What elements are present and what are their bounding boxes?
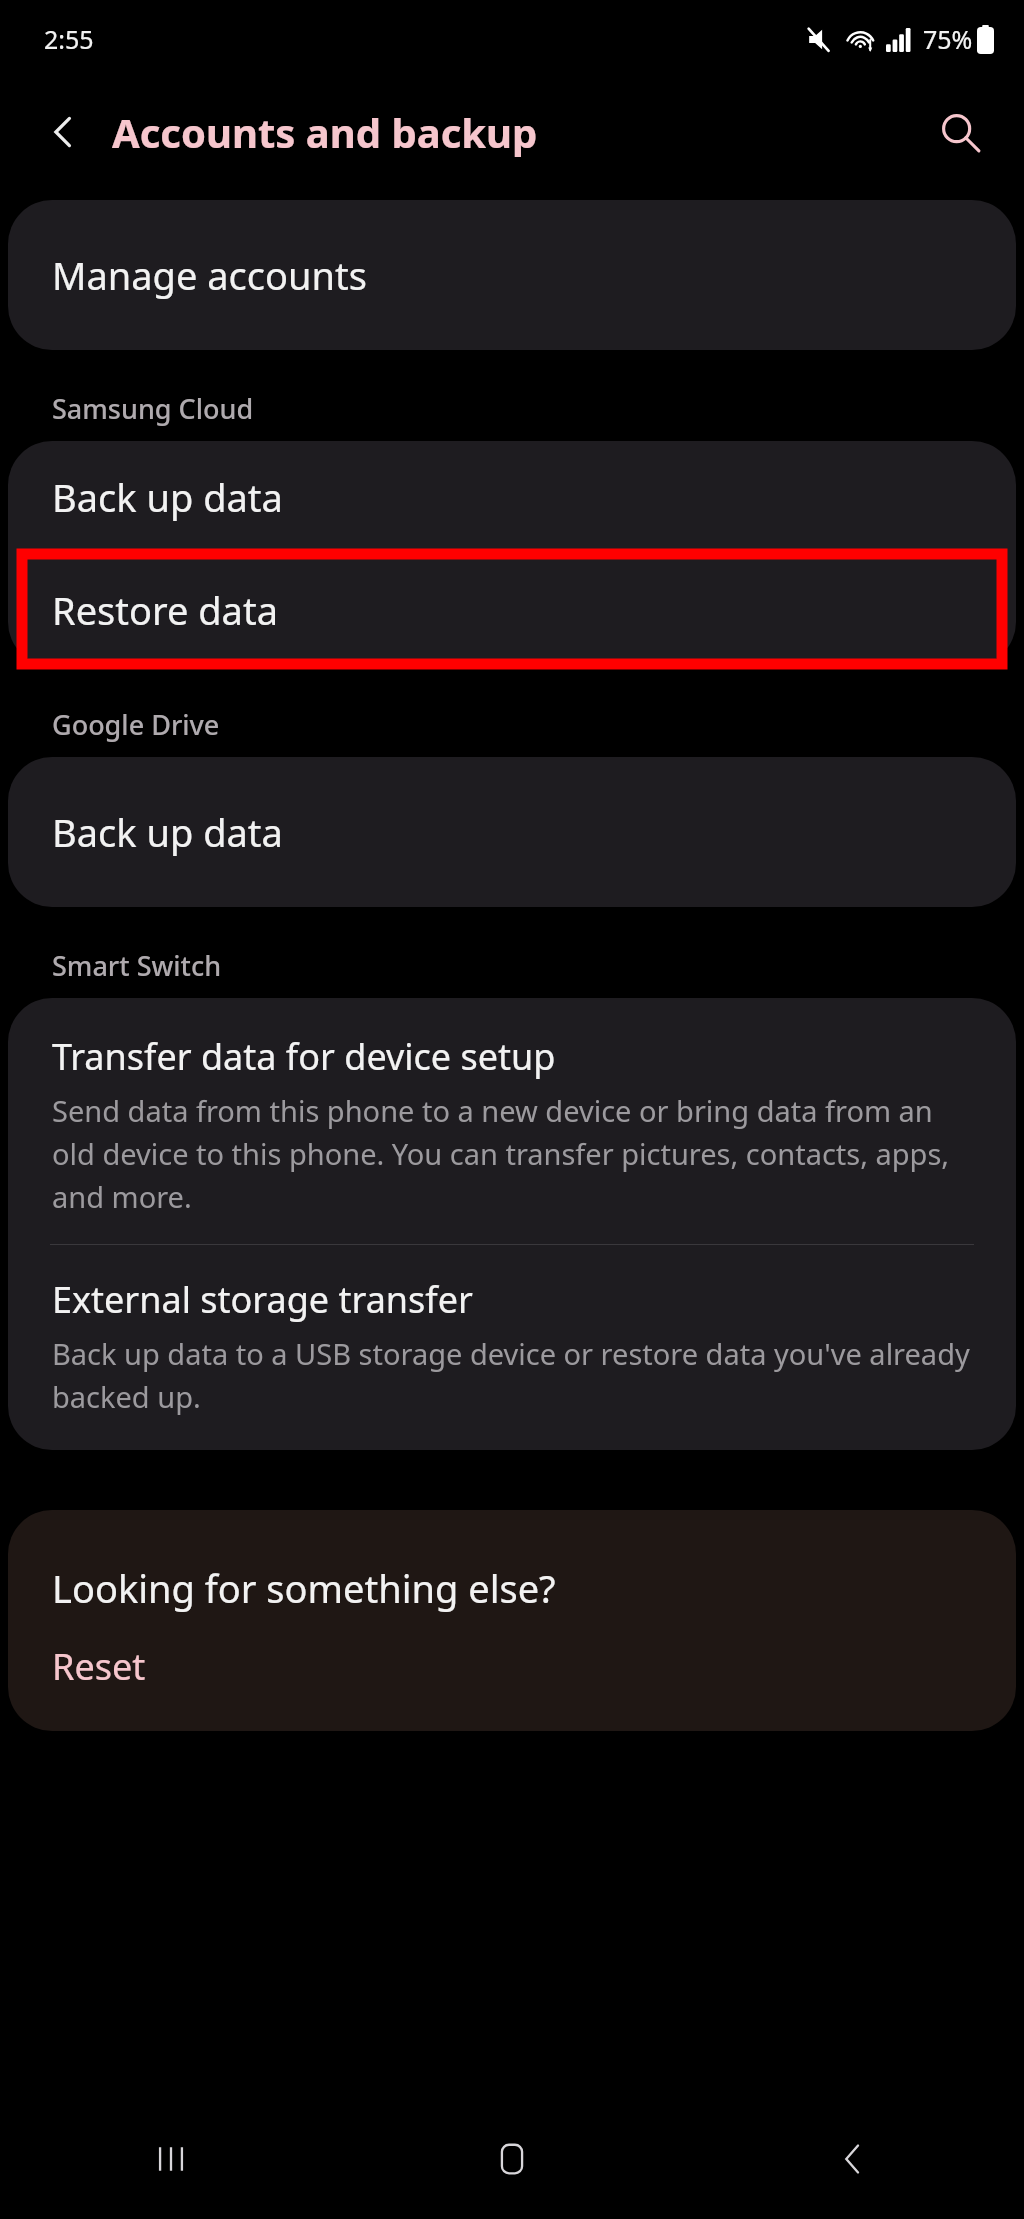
staticText: Back up data xyxy=(52,471,283,523)
staticText: Send data from this phone to a new devic… xyxy=(52,1091,972,1216)
staticText: Back up data xyxy=(52,806,283,858)
button[interactable]: Back xyxy=(30,98,98,166)
button[interactable]: Recents xyxy=(116,2104,226,2214)
staticText: Google Drive xyxy=(52,706,220,743)
button[interactable]: Back xyxy=(798,2104,908,2214)
button[interactable]: Looking for something else? xyxy=(8,1510,1016,1731)
staticText: External storage transfer xyxy=(52,1275,473,1324)
button[interactable]: Back up data xyxy=(8,757,1016,907)
button[interactable]: Restore data xyxy=(8,554,1016,666)
staticText: Accounts and backup xyxy=(112,105,538,159)
staticText: Manage accounts xyxy=(52,249,367,301)
button[interactable]: Back up data xyxy=(8,441,1016,553)
button[interactable]: Home xyxy=(457,2104,567,2214)
staticText: Restore data xyxy=(52,584,278,636)
staticText: Looking for something else? xyxy=(52,1562,556,1614)
staticText: Smart Switch xyxy=(52,947,222,984)
button[interactable]: Search xyxy=(924,96,996,168)
staticText: Back up data to a USB storage device or … xyxy=(52,1334,972,1416)
staticText: 75% xyxy=(923,22,973,56)
button[interactable]: Reset xyxy=(52,1642,146,1691)
staticText: 2:55 xyxy=(44,22,94,56)
staticText: Samsung Cloud xyxy=(52,390,254,427)
staticText: Transfer data for device setup xyxy=(52,1032,556,1081)
button[interactable]: Manage accounts xyxy=(8,200,1016,350)
